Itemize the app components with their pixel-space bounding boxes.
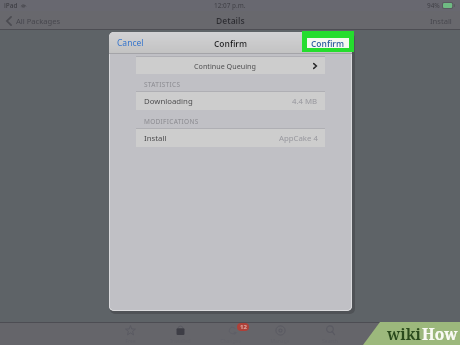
staticText: Continue Queuing (194, 61, 256, 71)
staticText: Confirm (311, 38, 345, 48)
button[interactable]: Downloading (136, 92, 325, 110)
staticText: All Packages (16, 16, 61, 26)
button[interactable]: Installed tab (155, 323, 205, 345)
staticText: STATISTICS (144, 80, 181, 89)
staticText: How (422, 323, 458, 344)
staticText: 4.4 MB (292, 96, 318, 107)
staticText: Details (216, 15, 245, 27)
staticText: 12 (240, 323, 247, 331)
staticText: wiki (387, 323, 422, 344)
staticText: Install (144, 133, 167, 144)
staticText: AppCake 4 (279, 133, 318, 144)
button[interactable]: All Packages (6, 16, 61, 26)
button[interactable]: Changes tab (205, 323, 255, 345)
button[interactable]: Continue Queuing (136, 57, 325, 74)
staticText: MODIFICATIONS (144, 117, 199, 126)
staticText: 12:07 p.m. (214, 1, 246, 10)
staticText: Downloading (144, 96, 193, 107)
button[interactable]: Cancel (117, 37, 144, 49)
button[interactable]: Install (136, 129, 325, 147)
button[interactable]: Confirm (302, 31, 354, 52)
staticText: Confirm (214, 38, 248, 49)
staticText: 94% (427, 1, 440, 10)
staticText: iPad (4, 1, 18, 10)
button[interactable]: Install (430, 16, 452, 26)
